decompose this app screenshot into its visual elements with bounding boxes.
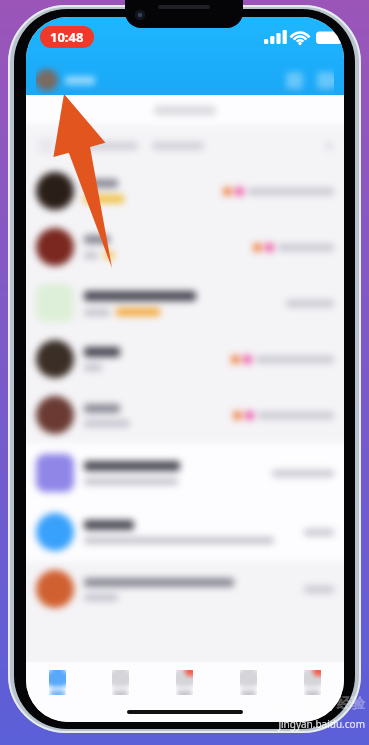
button[interactable]: Me	[216, 662, 280, 702]
button[interactable]: More	[280, 662, 344, 702]
button[interactable]: Messages	[286, 72, 303, 89]
button[interactable]: Chats	[26, 662, 89, 702]
button[interactable]	[154, 106, 216, 115]
button[interactable]	[26, 219, 344, 275]
button[interactable]	[26, 275, 344, 331]
staticText: 10:48	[50, 28, 84, 46]
button[interactable]	[26, 443, 344, 503]
button[interactable]	[26, 387, 344, 443]
button[interactable]: Profile	[36, 69, 58, 91]
button[interactable]	[26, 503, 344, 561]
staticText: du	[309, 691, 334, 717]
button[interactable]	[26, 163, 344, 219]
staticText: jingyan.baidu.com	[278, 717, 365, 731]
button[interactable]: Discover	[152, 662, 216, 702]
staticText: 经验	[337, 695, 365, 713]
button[interactable]: Contacts	[89, 662, 152, 702]
button[interactable]: More	[317, 72, 334, 89]
button[interactable]	[26, 561, 344, 617]
button[interactable]	[26, 331, 344, 387]
